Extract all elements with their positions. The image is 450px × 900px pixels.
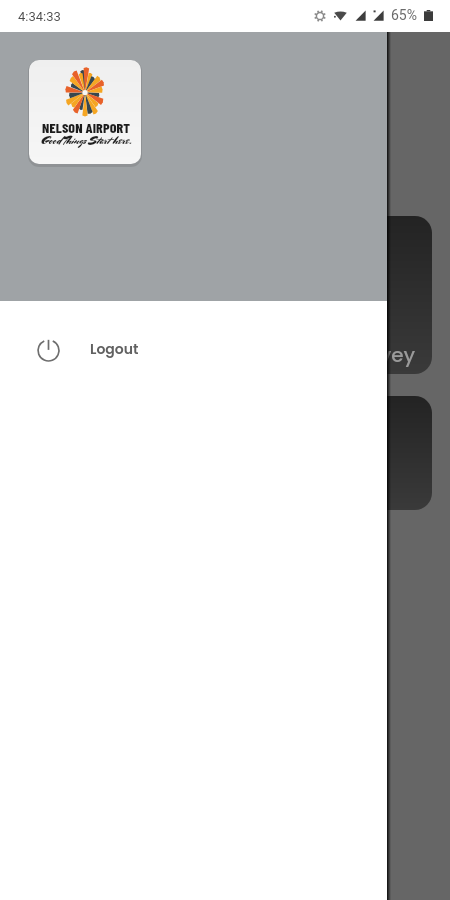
button[interactable]: Logout — [0, 301, 387, 397]
staticText: 4:34:33 — [18, 9, 61, 24]
staticText: NELSON AIRPORT — [42, 119, 131, 136]
staticText: Good Things Start here. — [41, 133, 132, 148]
button[interactable]: Nelson Airport logo — [29, 60, 141, 164]
staticText: Survey — [347, 341, 416, 369]
button[interactable]: Survey — [280, 216, 432, 374]
staticText: 65% — [391, 7, 417, 23]
button[interactable] — [280, 396, 432, 510]
staticText: Logout — [90, 339, 139, 359]
